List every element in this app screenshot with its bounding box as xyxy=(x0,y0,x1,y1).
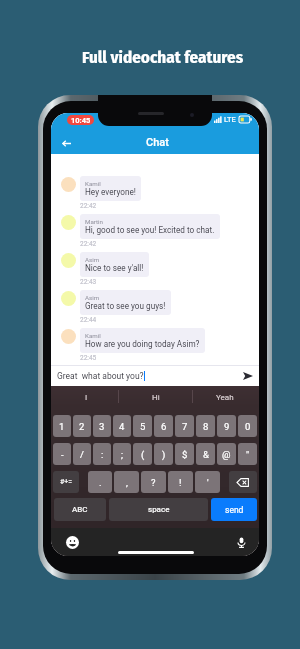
staticText: 1 xyxy=(59,421,65,432)
button[interactable]: 0 xyxy=(238,415,257,437)
staticText: Full videochat features xyxy=(82,47,244,67)
staticText: 10:45 xyxy=(71,116,91,125)
staticText: Great what about you? xyxy=(57,371,144,381)
button[interactable]: 9 xyxy=(217,415,236,437)
staticText: Martin xyxy=(85,218,103,225)
staticText: 22:43 xyxy=(80,278,97,286)
staticText: Asim xyxy=(85,294,100,301)
button[interactable]: ! xyxy=(168,471,193,493)
staticText: $ xyxy=(182,449,188,460)
button[interactable]: Emoji keyboard xyxy=(65,535,79,549)
staticText: 22:42 xyxy=(80,240,97,248)
button[interactable]: 3 xyxy=(93,415,111,437)
staticText: Great to see you guys! xyxy=(85,301,166,311)
staticText: Chat xyxy=(146,136,169,149)
staticText: . xyxy=(99,477,102,488)
staticText: Hey everyone! xyxy=(85,187,136,197)
button[interactable]: ? xyxy=(141,471,166,493)
button[interactable]: Kamil xyxy=(80,328,205,353)
button[interactable]: " xyxy=(238,443,257,465)
button[interactable]: , xyxy=(114,471,139,493)
staticText: 4 xyxy=(119,421,125,432)
staticText: / xyxy=(80,449,84,460)
staticText: ; xyxy=(121,449,124,460)
button[interactable]: 4 xyxy=(113,415,131,437)
button[interactable]: : xyxy=(93,443,111,465)
button[interactable]: Asim xyxy=(80,290,171,315)
button[interactable]: Back xyxy=(56,133,76,153)
button[interactable]: 1 xyxy=(53,415,71,437)
button[interactable]: Martin xyxy=(80,214,220,239)
staticText: 2 xyxy=(79,421,85,432)
staticText: @ xyxy=(222,449,231,460)
button[interactable]: & xyxy=(196,443,215,465)
button[interactable]: Backspace xyxy=(229,471,257,493)
button[interactable]: space xyxy=(109,498,208,521)
button[interactable]: 6 xyxy=(154,415,173,437)
staticText: ? xyxy=(151,477,156,488)
staticText: Hi, good to see you! Excited to chat. xyxy=(85,225,215,235)
staticText: 3 xyxy=(99,421,105,432)
staticText: ( xyxy=(141,449,145,460)
button[interactable]: Great what about you? xyxy=(51,366,259,386)
staticText: 0 xyxy=(245,421,251,432)
button[interactable]: . xyxy=(88,471,112,493)
button[interactable]: ABC xyxy=(54,498,106,521)
button[interactable]: Hi xyxy=(121,386,190,408)
staticText: " xyxy=(246,449,250,460)
staticText: 22:42 xyxy=(80,202,97,210)
staticText: ABC xyxy=(72,505,88,514)
button[interactable]: Yeah xyxy=(190,386,259,408)
button[interactable]: @ xyxy=(217,443,236,465)
staticText: & xyxy=(203,449,209,460)
staticText: I xyxy=(85,393,88,402)
button[interactable]: 7 xyxy=(175,415,194,437)
button[interactable]: send xyxy=(211,498,257,521)
staticText: 5 xyxy=(140,421,146,432)
button[interactable]: $ xyxy=(175,443,194,465)
staticText: ) xyxy=(162,449,166,460)
staticText: #+= xyxy=(60,478,73,486)
button[interactable]: Voice input xyxy=(234,535,248,549)
staticText: - xyxy=(61,449,64,460)
button[interactable]: ' xyxy=(195,471,220,493)
button[interactable]: #+= xyxy=(53,471,79,493)
staticText: space xyxy=(148,505,170,514)
button[interactable]: Asim xyxy=(80,252,149,277)
button[interactable]: Kamil xyxy=(80,176,141,201)
button[interactable]: 8 xyxy=(196,415,215,437)
staticText: Asim xyxy=(85,256,100,263)
button[interactable]: I xyxy=(51,386,121,408)
staticText: Kamil xyxy=(85,180,101,187)
button[interactable]: ; xyxy=(113,443,131,465)
staticText: 22:44 xyxy=(80,316,97,324)
staticText: LTE xyxy=(224,115,236,124)
staticText: : xyxy=(101,449,104,460)
staticText: 9 xyxy=(224,421,230,432)
staticText: , xyxy=(126,477,128,488)
staticText: Kamil xyxy=(85,332,101,339)
staticText: ' xyxy=(207,477,209,488)
button[interactable]: 2 xyxy=(73,415,91,437)
button[interactable]: ( xyxy=(133,443,152,465)
staticText: 6 xyxy=(161,421,167,432)
staticText: send xyxy=(225,505,244,515)
button[interactable]: Send message xyxy=(241,369,255,383)
staticText: Hi xyxy=(152,393,160,402)
staticText: 8 xyxy=(203,421,209,432)
button[interactable]: 5 xyxy=(133,415,152,437)
staticText: Nice to see y'all! xyxy=(85,263,144,273)
button[interactable]: - xyxy=(53,443,71,465)
staticText: ! xyxy=(179,477,182,488)
staticText: Yeah xyxy=(216,393,234,402)
staticText: 7 xyxy=(182,421,188,432)
staticText: How are you doing today Asim? xyxy=(85,339,200,349)
button[interactable]: / xyxy=(73,443,91,465)
staticText: 22:45 xyxy=(80,354,97,362)
button[interactable]: ) xyxy=(154,443,173,465)
